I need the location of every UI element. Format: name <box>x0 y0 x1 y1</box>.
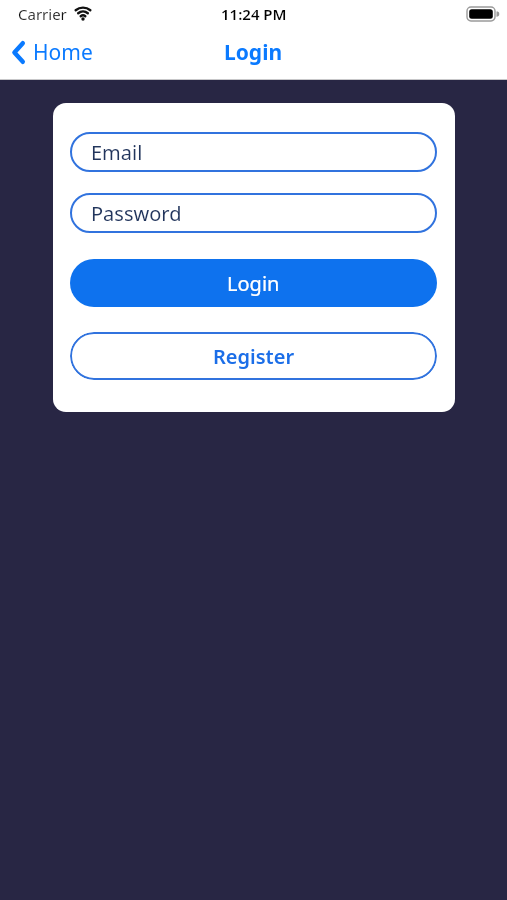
staticText: Register <box>213 343 295 370</box>
staticText: Home <box>33 38 93 67</box>
staticText: Password <box>91 200 182 227</box>
button[interactable]: Login <box>70 259 437 307</box>
button[interactable]: Home <box>12 38 93 67</box>
staticText: Login <box>227 270 280 297</box>
staticText: Email <box>91 139 143 166</box>
staticText: Carrier <box>18 4 67 24</box>
staticText: 11:24 PM <box>221 4 287 24</box>
button[interactable]: Email <box>70 132 437 172</box>
button[interactable]: Password <box>70 193 437 233</box>
button[interactable]: Register <box>70 332 437 380</box>
staticText: Login <box>224 38 283 67</box>
